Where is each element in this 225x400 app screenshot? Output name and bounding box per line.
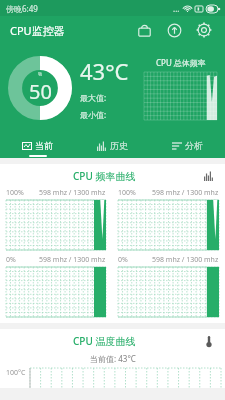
staticText: 50 [29, 78, 52, 105]
button[interactable]: Store [133, 19, 155, 41]
button[interactable]: 当前 [0, 132, 75, 158]
staticText: 598 mhz / 1300 mhz [39, 188, 106, 198]
staticText: 历史 [110, 140, 128, 151]
staticText: 最大值: [80, 92, 107, 103]
staticText: 傍晚6:49 [6, 3, 38, 14]
staticText: 100°C [6, 368, 26, 378]
button[interactable]: 分析 [150, 132, 225, 158]
staticText: 0% [6, 255, 16, 265]
staticText: 100% [6, 188, 24, 198]
button[interactable]: 历史 [75, 132, 150, 158]
staticText: 598 mhz / 1300 mhz [152, 255, 219, 265]
staticText: 当前 [35, 140, 53, 151]
staticText: 598 mhz / 1300 mhz [152, 188, 219, 198]
staticText: CPU 总体频率 [156, 57, 206, 68]
button[interactable]: Chart options [201, 168, 217, 184]
staticText: 当前值: 43°C [90, 353, 136, 364]
button[interactable]: Settings [193, 19, 215, 41]
staticText: 100% [118, 188, 136, 198]
staticText: 43°C [80, 56, 129, 86]
staticText: 598 mhz / 1300 mhz [39, 255, 106, 265]
button[interactable]: Temperature [201, 333, 217, 349]
staticText: 0% [118, 255, 128, 265]
staticText: 最小值: [80, 109, 107, 120]
staticText: 分析 [185, 140, 203, 151]
button[interactable]: Upgrade [163, 19, 185, 41]
staticText: ... [173, 3, 180, 14]
staticText: % [38, 71, 43, 78]
staticText: CPU 频率曲线 [73, 169, 136, 183]
staticText: CPU 温度曲线 [73, 334, 136, 348]
staticText: CPU监控器 [10, 23, 65, 38]
